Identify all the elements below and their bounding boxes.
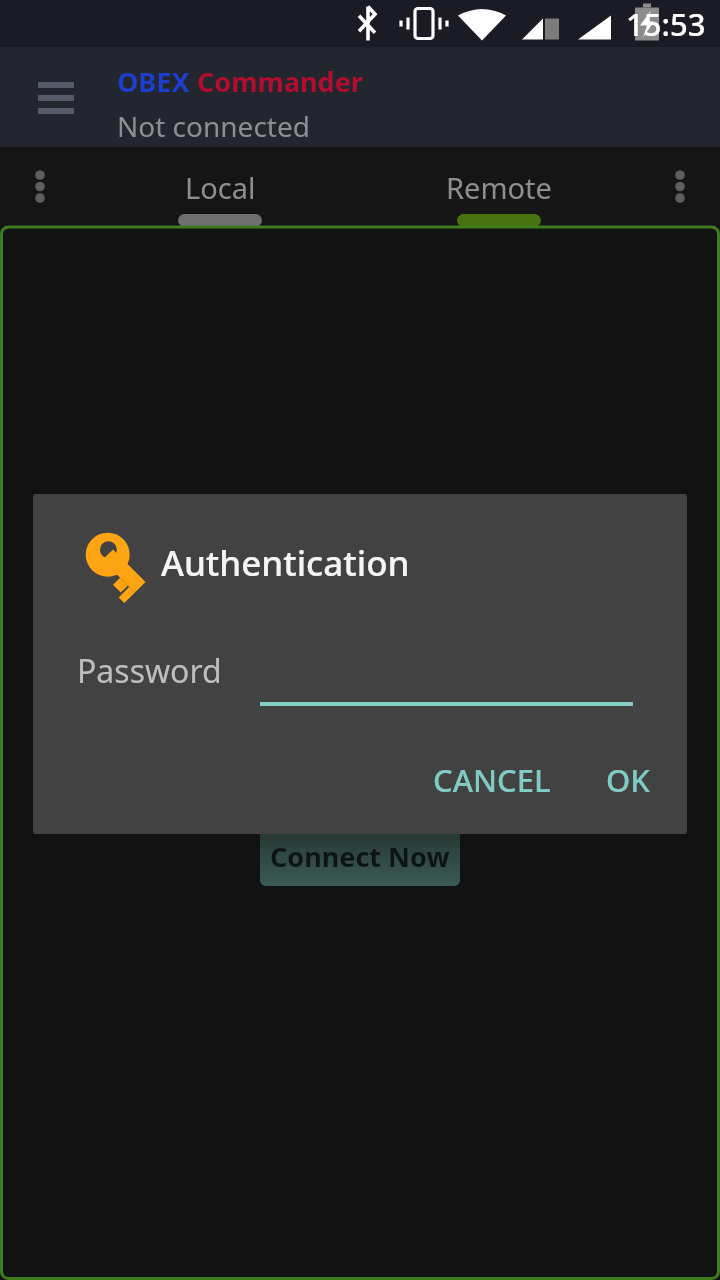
- staticText: Not connected: [117, 107, 310, 145]
- staticText: Authentication: [161, 539, 410, 587]
- button[interactable]: Open navigation drawer: [20, 71, 94, 123]
- staticText: Password: [77, 649, 222, 693]
- button[interactable]: Remote: [399, 147, 599, 227]
- button[interactable]: OK: [580, 749, 676, 811]
- staticText: OBEX: [117, 63, 190, 100]
- button[interactable]: CANCEL: [404, 749, 580, 811]
- staticText: Remote: [446, 168, 552, 207]
- staticText: Local: [185, 168, 256, 207]
- button[interactable]: More options: [22, 163, 58, 211]
- staticText: Commander: [190, 63, 363, 100]
- button[interactable]: Connect Now: [260, 826, 460, 886]
- button[interactable]: More options: [662, 163, 698, 211]
- staticText: Connect Now: [270, 838, 450, 875]
- staticText: CANCEL: [433, 759, 551, 801]
- staticText: 15:53: [626, 3, 706, 45]
- button[interactable]: Local: [120, 147, 320, 227]
- staticText: OK: [606, 759, 650, 801]
